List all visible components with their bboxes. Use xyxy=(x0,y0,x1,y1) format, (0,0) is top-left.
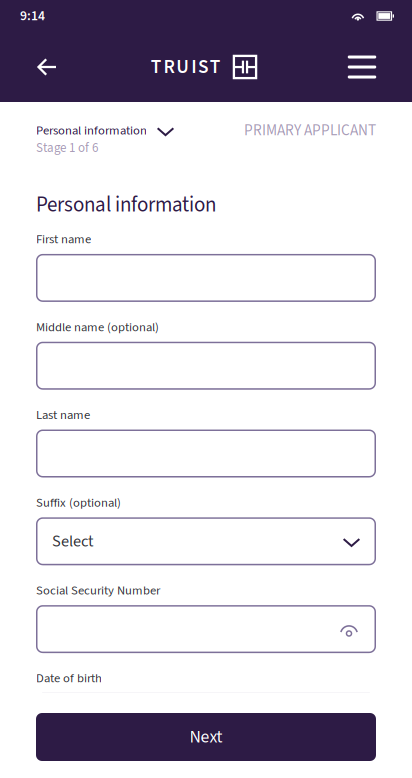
button[interactable] xyxy=(36,693,376,741)
staticText: PRIMARY APPLICANT xyxy=(244,120,376,141)
staticText: Last name xyxy=(36,406,90,424)
staticText: 9:14 xyxy=(20,6,45,26)
button[interactable] xyxy=(36,605,376,653)
staticText: Middle name (optional) xyxy=(36,318,159,336)
staticText: Personal information xyxy=(36,190,216,220)
button[interactable]: Menu xyxy=(340,45,384,89)
staticText: Social Security Number xyxy=(36,582,160,600)
button[interactable]: Select xyxy=(36,517,376,565)
staticText: Date of birth xyxy=(36,669,102,687)
staticText: Select xyxy=(52,530,94,553)
button[interactable]: Personal information xyxy=(36,122,174,157)
staticText: TRUIST xyxy=(151,53,221,81)
staticText: Stage 1 of 6 xyxy=(36,139,98,157)
button[interactable]: Next xyxy=(36,713,376,761)
button[interactable] xyxy=(36,342,376,390)
button[interactable] xyxy=(36,254,376,302)
staticText: Suffix (optional) xyxy=(36,494,121,512)
staticText: First name xyxy=(36,230,91,248)
button[interactable] xyxy=(36,429,376,477)
staticText: Next xyxy=(189,724,222,750)
button[interactable]: Back xyxy=(24,45,68,89)
staticText: Personal information xyxy=(36,121,147,139)
